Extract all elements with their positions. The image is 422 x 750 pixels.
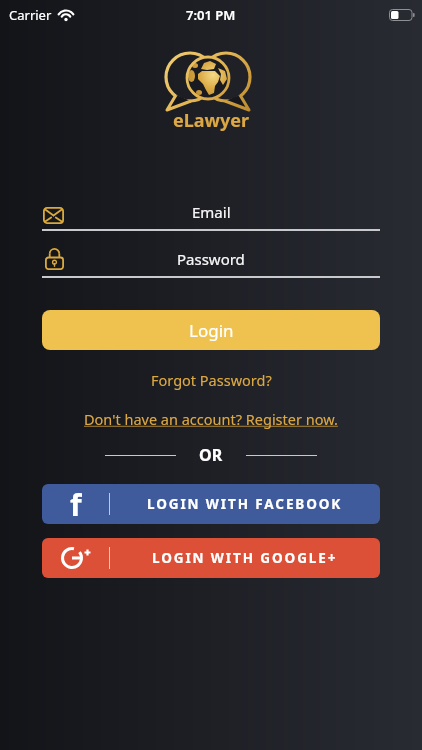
button[interactable]: f bbox=[42, 484, 380, 524]
button[interactable]: Forgot Password? bbox=[151, 370, 272, 390]
staticText: Login bbox=[189, 319, 234, 342]
staticText: 7:01 PM bbox=[186, 6, 236, 24]
staticText: Carrier bbox=[9, 6, 52, 24]
staticText: f bbox=[70, 484, 82, 524]
staticText: eLawyer bbox=[173, 108, 250, 133]
button[interactable]: LOGIN WITH GOOGLE+ bbox=[42, 538, 380, 578]
button[interactable]: Password bbox=[42, 246, 380, 272]
staticText: LOGIN WITH FACEBOOK bbox=[147, 495, 343, 513]
staticText: Password bbox=[177, 249, 245, 269]
button[interactable]: Login bbox=[42, 310, 380, 350]
staticText: OR bbox=[199, 444, 223, 466]
button[interactable]: Don't have an account? Register now. bbox=[84, 409, 338, 429]
staticText: Email bbox=[192, 202, 231, 222]
button[interactable]: Email bbox=[42, 199, 380, 225]
staticText: LOGIN WITH GOOGLE+ bbox=[152, 549, 338, 567]
